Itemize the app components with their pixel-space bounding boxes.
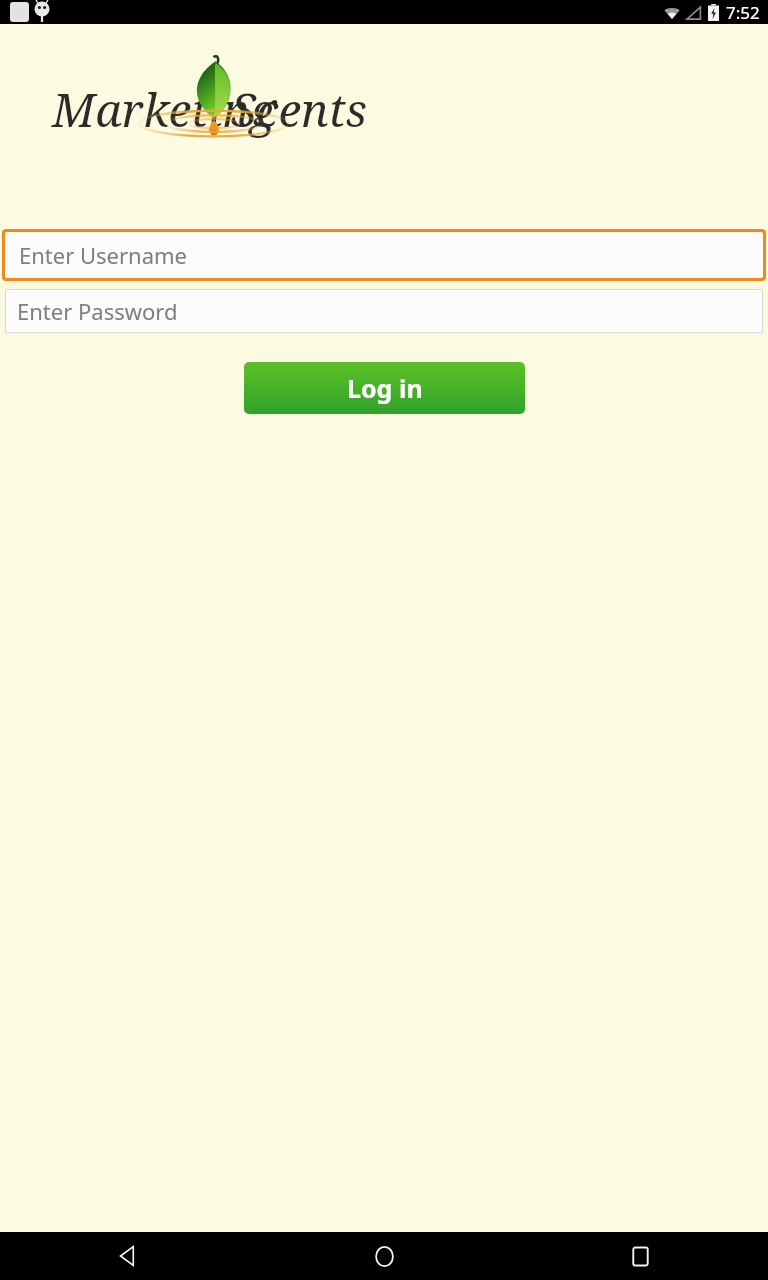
- button[interactable]: Back: [0, 1232, 256, 1280]
- staticText: Enter Username: [19, 240, 188, 270]
- button[interactable]: Enter Password: [17, 289, 763, 333]
- staticText: Scents: [231, 78, 367, 141]
- staticText: Enter Password: [17, 296, 178, 326]
- button[interactable]: Home: [256, 1232, 512, 1280]
- staticText: Log in: [347, 371, 423, 405]
- button[interactable]: Enter Username: [5, 232, 763, 278]
- button[interactable]: Log in: [244, 362, 525, 414]
- button[interactable]: Recent apps: [512, 1232, 768, 1280]
- staticText: Marketing: [52, 78, 276, 141]
- staticText: 7:52: [726, 1, 760, 24]
